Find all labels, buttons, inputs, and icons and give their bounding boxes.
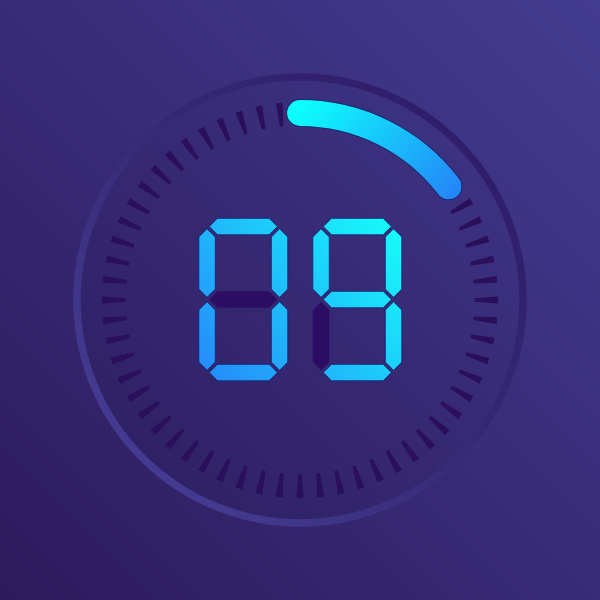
- button[interactable]: Timer 09 seconds, tap to start or pause: [0, 0, 600, 600]
